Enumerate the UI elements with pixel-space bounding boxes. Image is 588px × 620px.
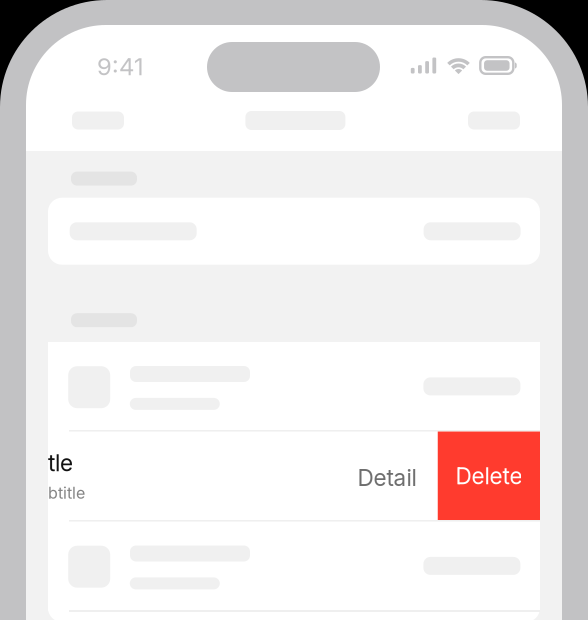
button[interactable]: List item <box>48 342 540 431</box>
button[interactable]: Detail <box>337 433 437 522</box>
staticText: Title <box>29 449 73 477</box>
button[interactable]: More <box>450 98 538 142</box>
button[interactable]: Back <box>54 98 142 142</box>
staticText: 9:41 <box>97 52 144 81</box>
staticText: Delete <box>455 462 522 490</box>
staticText: Subtitle <box>29 483 85 503</box>
staticText: Detail <box>357 464 416 491</box>
button[interactable]: List item <box>48 521 540 610</box>
button[interactable]: Delete <box>438 431 540 520</box>
